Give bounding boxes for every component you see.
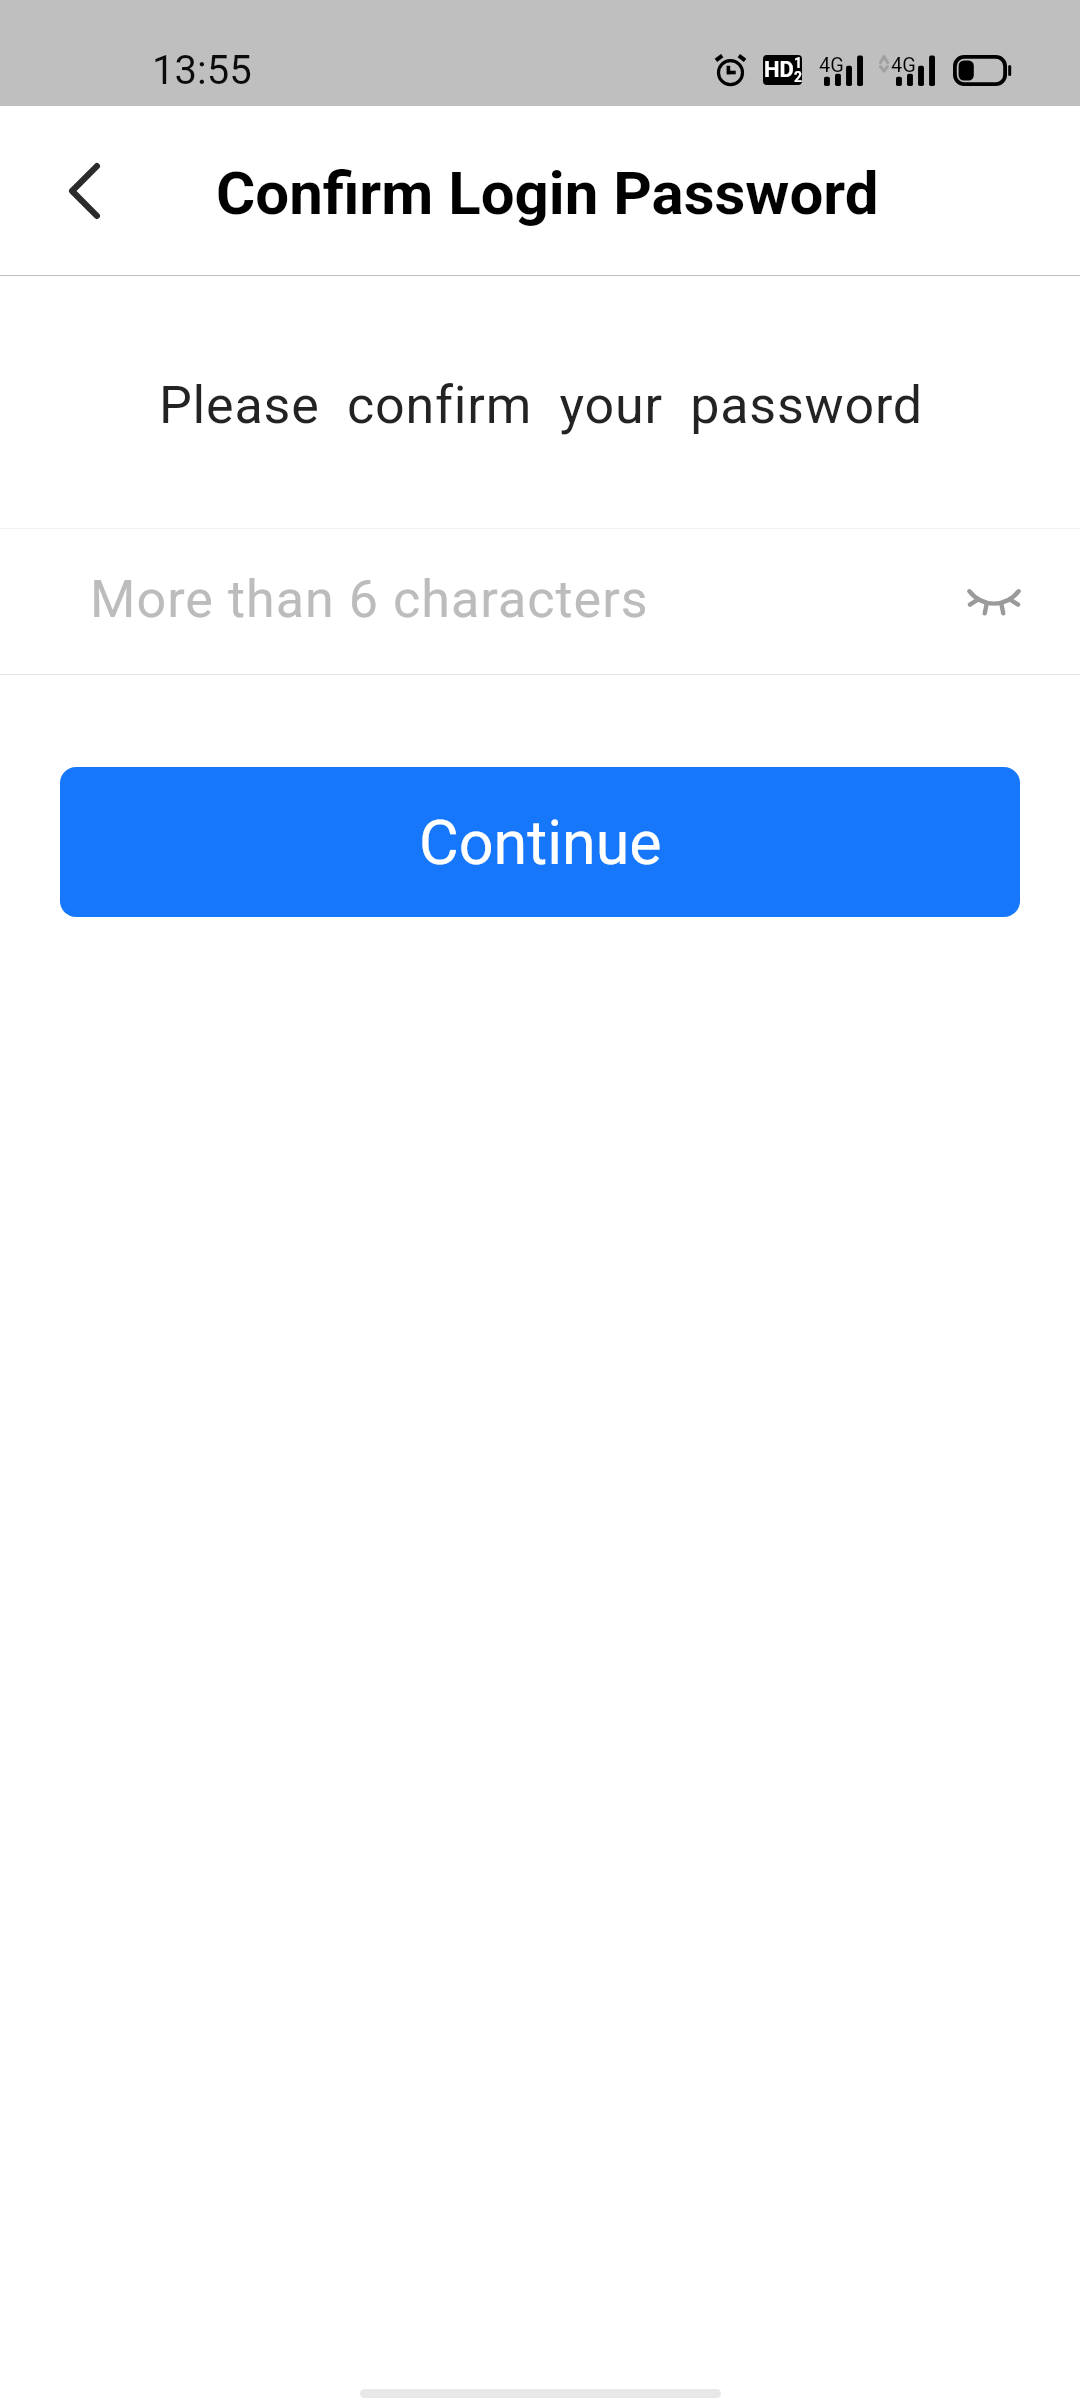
staticText: 4G <box>891 53 916 76</box>
button[interactable]: Show password <box>950 558 1038 646</box>
button[interactable]: Continue <box>60 767 1020 917</box>
staticText: 1 <box>794 55 802 71</box>
staticText: HD <box>764 57 794 83</box>
staticText: Please confirm your password <box>159 375 923 436</box>
button[interactable]: Back <box>34 141 134 241</box>
staticText: Confirm Login Password <box>216 158 879 228</box>
button[interactable]: More than 6 characters <box>0 529 1080 674</box>
staticText: More than 6 characters <box>90 569 649 630</box>
staticText: 4G <box>819 53 844 76</box>
staticText: 13:55 <box>152 47 252 94</box>
staticText: Continue <box>419 807 662 878</box>
staticText: 2 <box>794 69 802 85</box>
